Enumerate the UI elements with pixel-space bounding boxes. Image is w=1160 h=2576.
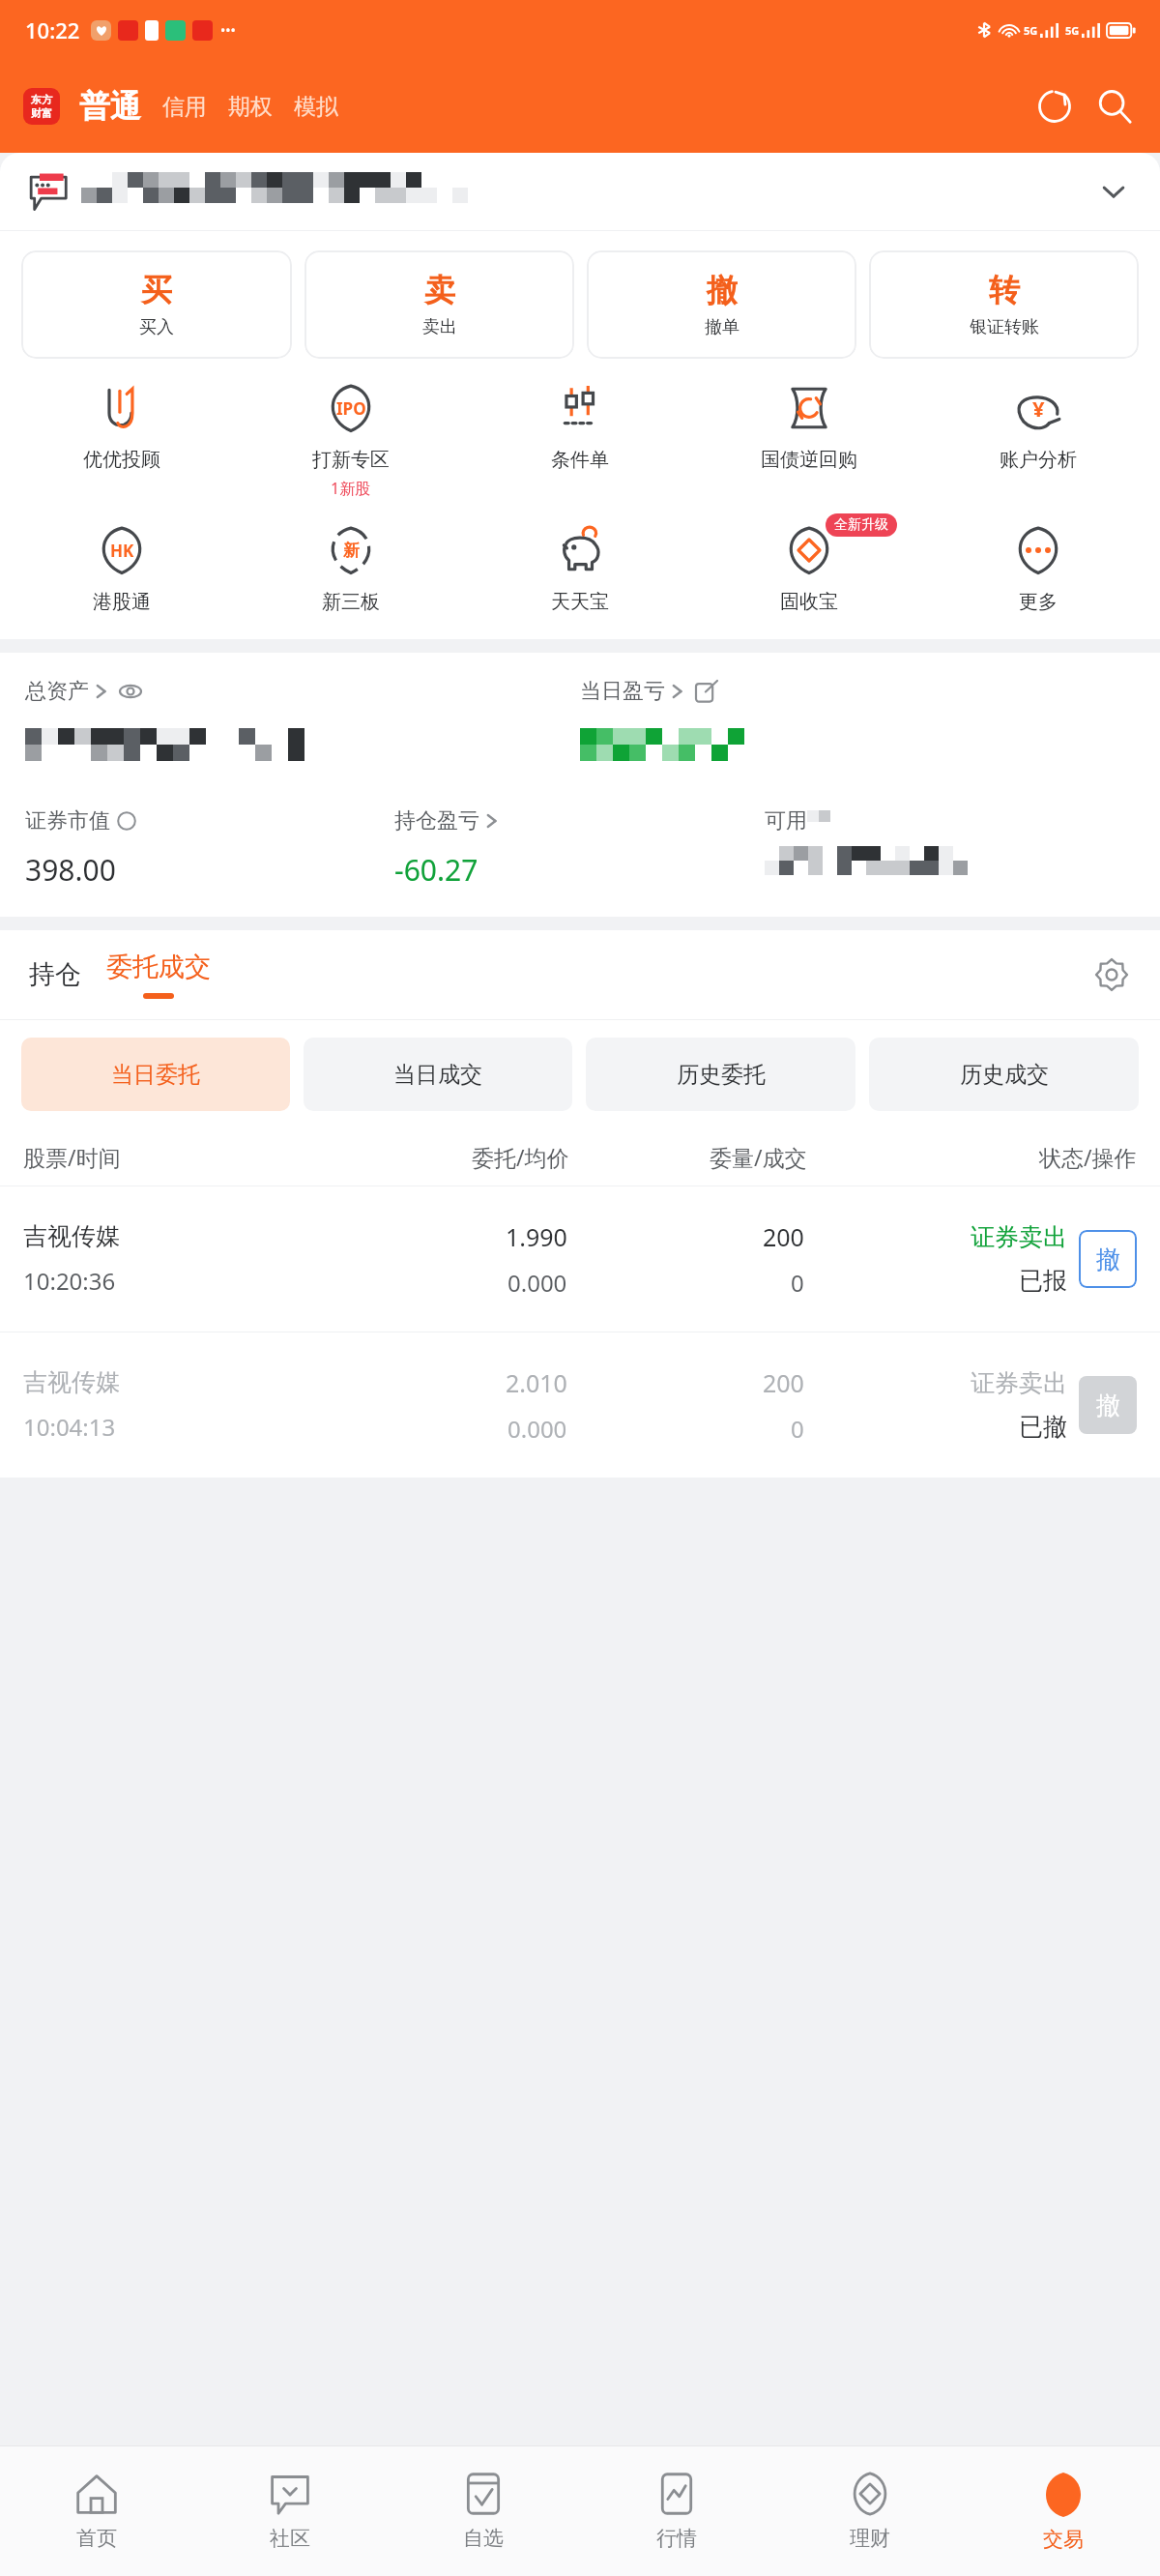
staticText: 已撤 [1019,1412,1067,1442]
button[interactable]: 吉视传媒 [0,1186,1160,1332]
button[interactable]: 委托成交 [106,951,211,999]
staticText: 全新升级 [834,516,888,534]
staticText: 10:04:13 [23,1411,116,1443]
staticText: 银证转账 [970,316,1039,338]
staticText: 吉视传媒 [23,1367,120,1397]
button[interactable]: 天天宝 [465,520,694,614]
button[interactable]: 撤 [587,250,856,359]
staticText: 5G [1065,23,1080,38]
button[interactable]: 首页 [0,2472,193,2551]
button[interactable]: 行情 [580,2472,773,2551]
button[interactable]: 优优投顾 [8,378,236,472]
staticText: 撤 [1096,1244,1120,1274]
staticText: 账户分析 [1000,448,1077,472]
staticText: 社区 [270,2526,310,2551]
button[interactable]: 交易 [967,2471,1160,2552]
button[interactable]: 证券市值 [25,807,394,890]
button[interactable]: 当日盈亏 [580,678,1135,705]
button[interactable]: Refresh [1030,82,1079,131]
staticText: 行情 [656,2526,697,2551]
button[interactable]: Search [1090,82,1139,131]
staticText: 打新专区 [312,448,390,472]
staticText: 证券市值 [25,807,110,834]
button[interactable]: 持仓 [25,958,85,991]
staticText: 固收宝 [780,590,838,614]
button[interactable]: 吉视传媒 [0,1332,1160,1478]
button[interactable]: 转 [869,250,1139,359]
staticText: 证券卖出 [971,1222,1067,1252]
button[interactable]: 当日成交 [304,1038,572,1111]
staticText: 理财 [850,2526,890,2551]
staticText: 国债逆回购 [761,448,857,472]
staticText: ¥ [1032,394,1045,423]
button[interactable]: 卖 [304,250,574,359]
button[interactable]: 撤 [1079,1376,1137,1434]
button[interactable]: HK [8,520,236,614]
staticText: 证券卖出 [971,1368,1067,1398]
button[interactable]: Settings [1088,951,1135,998]
staticText: 200 [763,1220,804,1253]
staticText: 财富 [31,106,52,120]
staticText: 当日成交 [393,1061,482,1089]
staticText: 转 [989,271,1020,309]
staticText: 港股通 [93,590,151,614]
button[interactable]: 更多 [923,520,1152,614]
button[interactable]: 模拟 [290,89,342,125]
button[interactable]: 全新升级 [694,520,923,614]
staticText: 期权 [228,93,273,121]
staticText: 持仓盈亏 [394,807,479,834]
other: Expand [1094,172,1133,211]
button[interactable]: 期权 [224,89,276,125]
staticText: 0 [791,1413,804,1445]
button[interactable]: 国债逆回购 [694,378,923,472]
button[interactable]: IPO [236,378,465,499]
staticText: 1.990 [506,1220,567,1253]
staticText: 委托成交 [106,951,211,983]
staticText: 新三板 [322,590,380,614]
staticText: 0.000 [507,1267,567,1299]
staticText: 5G [1024,23,1038,38]
staticText: 2.010 [506,1366,567,1399]
button[interactable]: 信用 [159,89,211,125]
staticText: 交易 [1043,2527,1084,2552]
staticText: 优优投顾 [83,448,160,472]
button[interactable]: 自选 [387,2472,580,2551]
staticText: 买 [141,271,172,309]
staticText: 1新股 [331,478,371,499]
staticText: 总资产 [25,678,89,705]
button[interactable]: 新 [236,520,465,614]
staticText: 信用 [162,93,207,121]
staticText: 撤 [707,271,738,309]
button[interactable]: 普通 [75,83,145,130]
staticText: 卖出 [422,316,457,338]
staticText: 当日盈亏 [580,678,665,705]
button[interactable]: 历史委托 [586,1038,855,1111]
button[interactable]: 买 [21,250,292,359]
button[interactable]: ¥ [923,378,1152,472]
staticText: 10:20:36 [23,1265,116,1297]
staticText: 首页 [76,2526,117,2551]
staticText: 持仓 [29,958,81,991]
staticText: 委量/成交 [710,1142,807,1172]
staticText: 买入 [139,316,174,338]
staticText: HK [110,540,134,562]
button[interactable]: 社区 [193,2472,387,2551]
staticText: 天天宝 [551,590,609,614]
staticText: IPO [336,397,366,420]
staticText: 200 [763,1366,804,1399]
staticText: 新 [343,541,360,561]
staticText: 状态/操作 [1039,1142,1137,1172]
staticText: 撤 [1096,1390,1120,1420]
staticText: 398.00 [25,850,116,890]
button[interactable]: 理财 [773,2472,967,2551]
button[interactable]: 总资产 [25,678,580,705]
staticText: 条件单 [551,448,609,472]
button[interactable]: 条件单 [465,378,694,472]
button[interactable]: 历史成交 [869,1038,1139,1111]
staticText: 更多 [1019,590,1058,614]
button[interactable]: Expand [0,153,1160,230]
button[interactable]: 撤 [1079,1230,1137,1288]
button[interactable]: 当日委托 [21,1038,290,1111]
button[interactable]: 持仓盈亏 [394,807,765,890]
staticText: 历史委托 [677,1061,766,1089]
